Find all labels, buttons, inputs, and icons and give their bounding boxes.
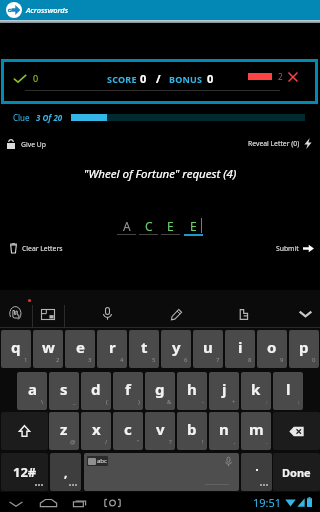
staticText: k <box>251 379 261 399</box>
staticText: E <box>167 218 174 234</box>
staticText: o <box>267 337 277 357</box>
button[interactable]: l <box>273 372 303 410</box>
staticText: 9 <box>280 356 284 364</box>
button[interactable] <box>241 453 272 491</box>
button[interactable]: r <box>97 330 127 368</box>
button[interactable]: Lives <box>248 71 298 82</box>
button[interactable]: 12# <box>1 453 48 491</box>
button[interactable]: q <box>1 330 31 368</box>
button[interactable]: u <box>193 330 223 368</box>
staticText: v <box>156 419 165 439</box>
staticText: r <box>109 337 116 357</box>
staticText: 0 <box>312 356 316 364</box>
button[interactable]: a <box>17 372 47 410</box>
button[interactable]: d <box>81 372 111 410</box>
button[interactable]: p <box>289 330 319 368</box>
button[interactable]: z <box>49 412 79 450</box>
staticText: / <box>105 438 108 446</box>
staticText: Reveal Letter (0) <box>248 139 300 148</box>
button[interactable]: f <box>113 372 143 410</box>
button[interactable]: m <box>241 412 271 450</box>
staticText: i <box>238 337 243 357</box>
button[interactable]: Correct answers <box>13 72 39 84</box>
staticText: \ <box>41 398 44 406</box>
staticText: f <box>125 379 131 399</box>
button[interactable]: Clipboard <box>41 309 55 320</box>
button[interactable]: h <box>177 372 207 410</box>
staticText: ( <box>106 398 108 406</box>
button[interactable]: o <box>257 330 287 368</box>
button[interactable]: Gesture typing <box>9 306 22 321</box>
button[interactable]: k <box>241 372 271 410</box>
button[interactable]: E <box>184 218 203 251</box>
button[interactable]: Shift <box>1 412 48 450</box>
button[interactable]: Screenshot <box>104 499 121 507</box>
button[interactable]: Handwriting <box>171 309 182 320</box>
staticText: 4 <box>120 356 124 364</box>
button[interactable]: b <box>177 412 207 450</box>
staticText: : <box>266 398 268 406</box>
staticText: 3 Of 20 <box>36 112 63 123</box>
staticText: Clue <box>13 112 30 123</box>
button[interactable]: w <box>33 330 63 368</box>
staticText: x <box>92 419 101 439</box>
button[interactable]: y <box>161 330 191 368</box>
button[interactable]: Reveal Letter (0) <box>248 138 320 149</box>
staticText: n <box>219 419 229 439</box>
button[interactable]: Done <box>273 453 320 491</box>
button[interactable]: Home <box>40 499 57 507</box>
button[interactable]: Back <box>10 500 22 508</box>
button[interactable]: e <box>65 330 95 368</box>
button[interactable]: Space <box>84 453 239 491</box>
staticText: 12# <box>13 463 37 481</box>
button[interactable]: Submit <box>276 244 320 253</box>
staticText: q <box>11 337 21 357</box>
button[interactable]: g <box>145 372 175 410</box>
staticText: Acrosswords <box>26 5 69 15</box>
staticText: j <box>222 379 227 399</box>
staticText: ; <box>298 398 300 406</box>
button[interactable]: Backspace <box>273 412 320 450</box>
staticText: e <box>76 337 85 357</box>
button[interactable]: A <box>117 218 136 235</box>
staticText: 2 <box>278 71 283 82</box>
button[interactable]: E <box>161 218 180 235</box>
staticText: , <box>64 464 68 480</box>
staticText: 3 <box>88 356 92 364</box>
button[interactable]: n <box>209 412 239 450</box>
staticText: 5 <box>152 356 156 364</box>
button[interactable]: Voice input <box>103 307 112 320</box>
button[interactable]: t <box>129 330 159 368</box>
staticText: d <box>91 379 101 399</box>
staticText: / <box>156 71 161 86</box>
staticText: + <box>232 398 236 406</box>
button[interactable]: C <box>139 218 158 235</box>
button[interactable]: v <box>145 412 175 450</box>
staticText: m <box>249 419 264 439</box>
button[interactable]: Stickers <box>239 309 248 320</box>
button[interactable]: Give Up <box>7 139 46 149</box>
staticText: abc <box>97 457 107 465</box>
staticText: , <box>234 438 236 446</box>
staticText: BONUS <box>169 73 203 85</box>
staticText: l <box>286 379 291 399</box>
staticText: 2 <box>56 356 60 364</box>
button[interactable]: j <box>209 372 239 410</box>
button[interactable]: Clear Letters <box>10 243 63 253</box>
staticText: p <box>299 337 309 357</box>
staticText: Clear Letters <box>22 244 63 253</box>
button[interactable]: c <box>113 412 143 450</box>
button[interactable]: s <box>49 372 79 410</box>
staticText: "Wheel of Fortune" request (4) <box>0 166 320 182</box>
staticText: c <box>124 419 132 439</box>
button[interactable]: i <box>225 330 255 368</box>
button[interactable]: Hide keyboard <box>299 310 312 318</box>
button[interactable]: Recents <box>73 499 88 507</box>
button[interactable]: , <box>50 453 81 491</box>
staticText: ! <box>202 438 204 446</box>
staticText: Submit <box>276 244 299 253</box>
staticText: u <box>203 337 213 357</box>
button[interactable]: x <box>81 412 111 450</box>
staticText: E <box>190 218 197 234</box>
staticText: ? <box>169 438 172 446</box>
